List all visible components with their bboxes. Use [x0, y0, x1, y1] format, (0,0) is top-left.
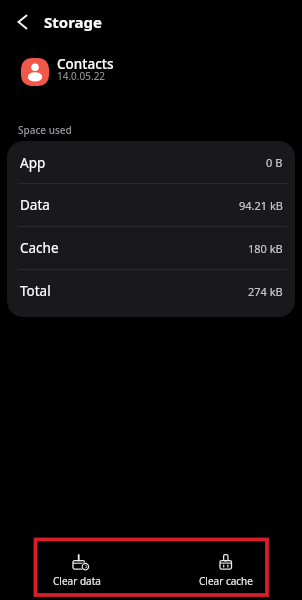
staticText: Total [20, 282, 51, 300]
staticText: Storage [44, 12, 102, 32]
button[interactable]: Total [20, 270, 283, 312]
button[interactable]: Clear data [26, 543, 127, 595]
button[interactable] [6, 6, 40, 38]
staticText: Clear data [53, 574, 101, 588]
staticText: Clear cache [199, 574, 253, 588]
staticText: 274 kB [248, 284, 283, 299]
button[interactable]: Clear cache [175, 543, 276, 595]
staticText: 180 kB [248, 241, 283, 256]
staticText: Cache [20, 239, 59, 257]
button[interactable]: Cache [20, 227, 283, 269]
staticText: Contacts [57, 55, 114, 73]
staticText: Space used [18, 123, 72, 137]
staticText: 94.21 kB [239, 198, 283, 213]
button[interactable]: Data [20, 184, 283, 226]
button[interactable]: App [20, 142, 283, 183]
staticText: App [20, 154, 46, 172]
staticText: 14.0.05.22 [57, 69, 106, 83]
staticText: 0 B [266, 155, 283, 170]
staticText: Data [20, 196, 50, 214]
